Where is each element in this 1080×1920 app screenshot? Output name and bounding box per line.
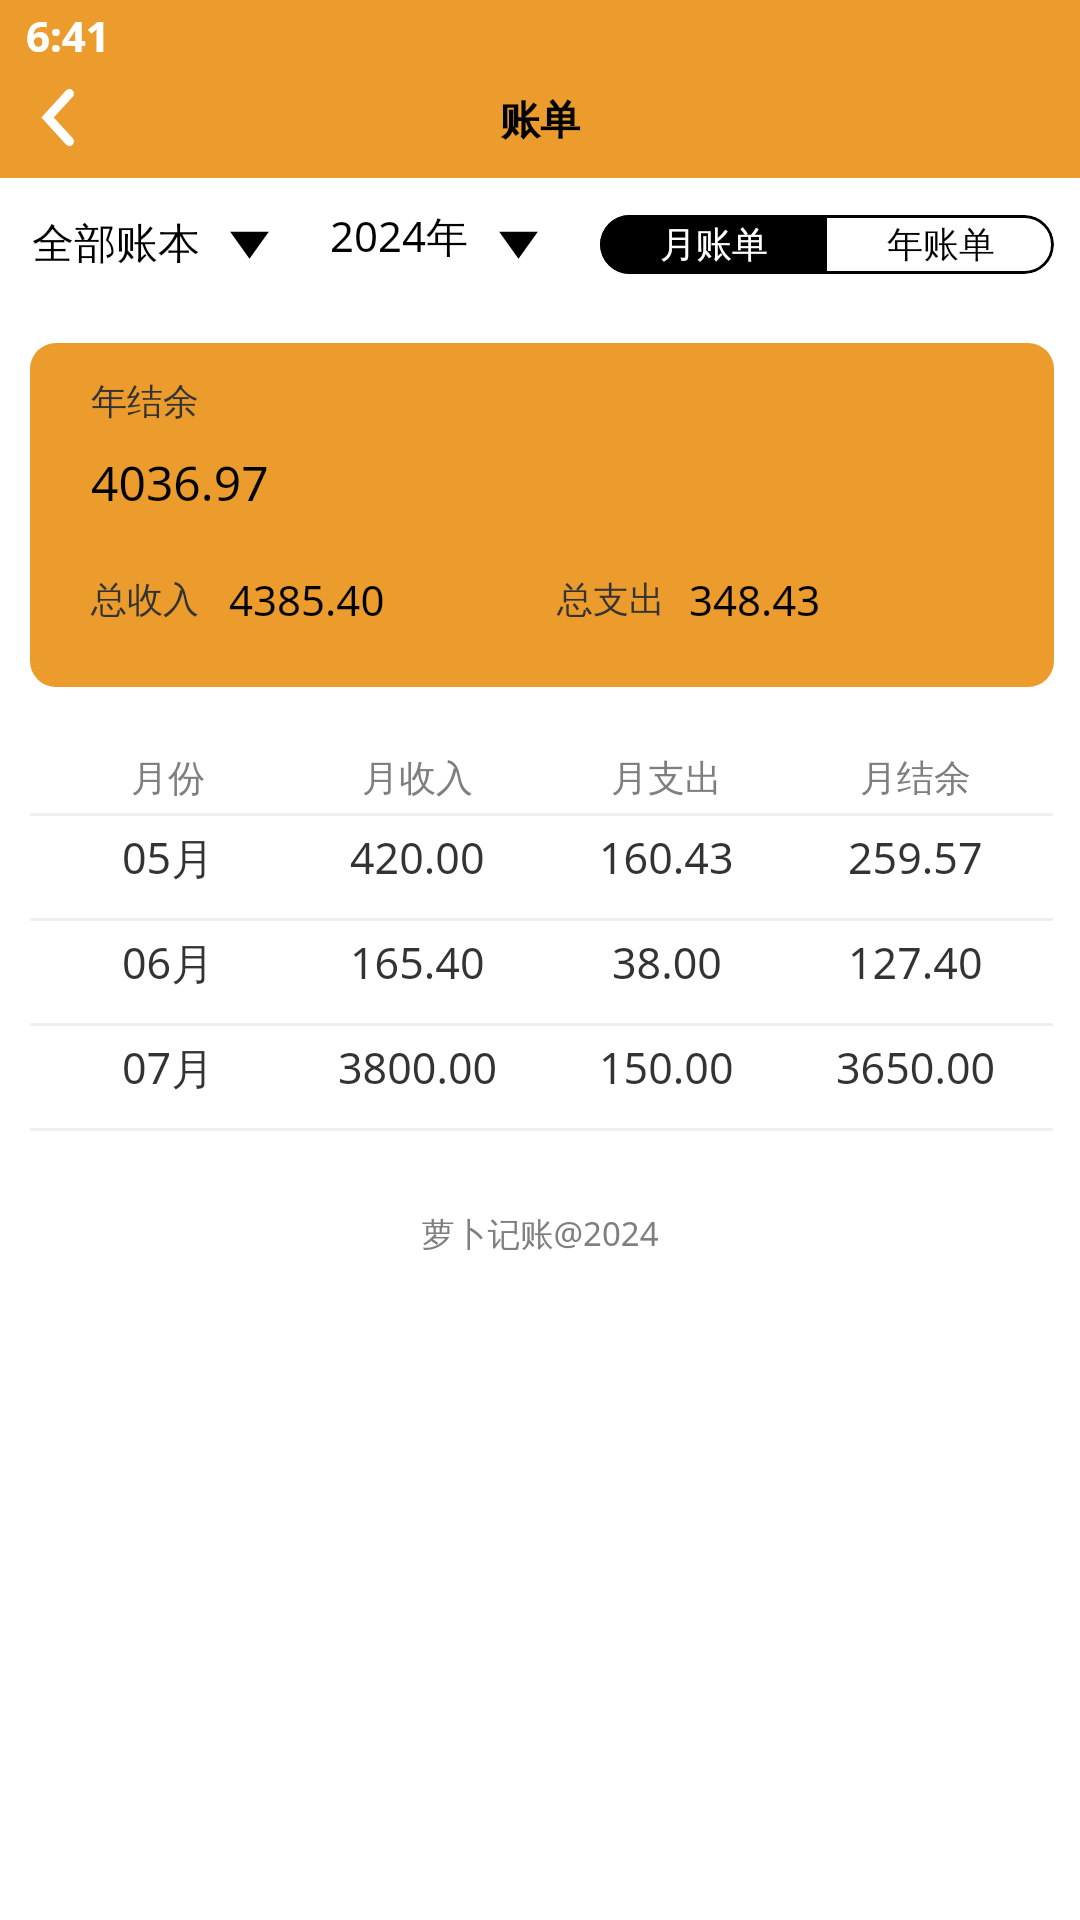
staticText: 3800.00: [338, 1038, 498, 1097]
staticText: 05月: [122, 828, 215, 887]
button[interactable]: 月账单: [600, 215, 827, 274]
staticText: 年结余: [91, 379, 199, 424]
staticText: 07月: [122, 1038, 215, 1097]
staticText: 160.43: [599, 828, 734, 887]
staticText: 165.40: [350, 933, 485, 992]
staticText: 月结余: [860, 755, 971, 802]
staticText: 2024年: [330, 207, 469, 264]
staticText: 420.00: [350, 828, 485, 887]
staticText: 6:41: [26, 7, 110, 64]
button[interactable]: 05月: [30, 816, 1053, 918]
staticText: 348.43: [689, 571, 821, 628]
staticText: 全部账本: [32, 218, 200, 271]
staticText: 萝卜记账@2024: [0, 1211, 1080, 1256]
staticText: 月收入: [362, 755, 473, 802]
staticText: 38.00: [612, 933, 722, 992]
button[interactable]: 07月: [30, 1026, 1053, 1128]
staticText: 4036.97: [91, 450, 269, 515]
staticText: 总收入: [91, 577, 199, 622]
staticText: 月份: [131, 755, 205, 802]
button[interactable]: 06月: [30, 921, 1053, 1023]
button[interactable]: 全部账本: [32, 218, 266, 271]
button[interactable]: 年结余: [30, 343, 1054, 687]
staticText: 年账单: [887, 222, 995, 267]
staticText: 259.57: [848, 828, 983, 887]
button[interactable]: Back: [8, 67, 108, 167]
staticText: 月支出: [611, 755, 722, 802]
staticText: 总支出: [557, 577, 665, 622]
staticText: 账单: [500, 95, 580, 145]
staticText: 150.00: [599, 1038, 734, 1097]
staticText: 4385.40: [229, 571, 385, 628]
staticText: 127.40: [848, 933, 983, 992]
staticText: 3650.00: [836, 1038, 996, 1097]
button[interactable]: 年账单: [827, 215, 1054, 274]
staticText: 月账单: [660, 222, 768, 267]
staticText: 06月: [122, 933, 215, 992]
button[interactable]: 2024年: [330, 216, 535, 273]
